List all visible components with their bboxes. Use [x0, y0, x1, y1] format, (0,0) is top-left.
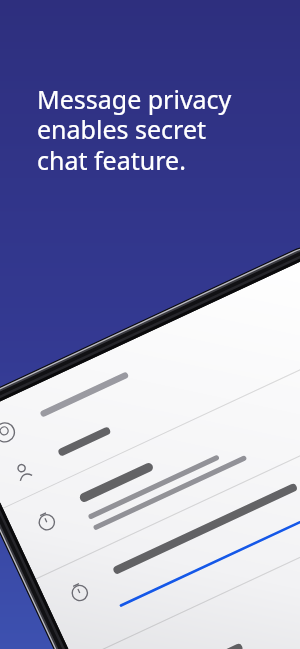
button[interactable]: Message privacy enables secret chat feat…: [37, 82, 232, 178]
staticText: Message privacy enables secret chat feat…: [37, 82, 232, 178]
other: Phone showing secret chat settings: [0, 0, 300, 649]
